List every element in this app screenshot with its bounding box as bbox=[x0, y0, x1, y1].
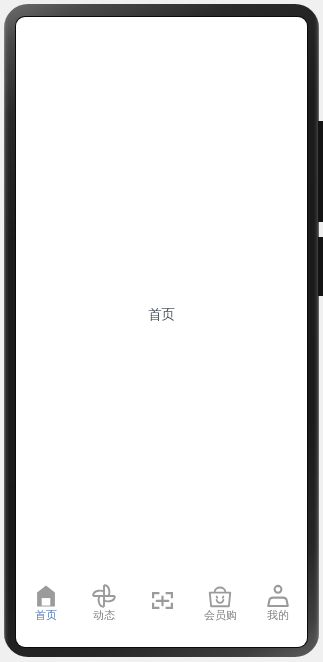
staticText: 会员购 bbox=[204, 608, 237, 622]
button[interactable]: 首页 bbox=[16, 564, 75, 632]
staticText: 首页 bbox=[35, 608, 57, 622]
staticText: 我的 bbox=[267, 608, 289, 622]
staticText: 动态 bbox=[93, 608, 115, 622]
staticText: 首页 bbox=[148, 306, 175, 323]
button[interactable]: 会员购 bbox=[191, 564, 249, 632]
button[interactable]: Scan QR code bbox=[133, 564, 191, 632]
button[interactable]: 我的 bbox=[249, 564, 307, 632]
button[interactable]: 动态 bbox=[75, 564, 133, 632]
